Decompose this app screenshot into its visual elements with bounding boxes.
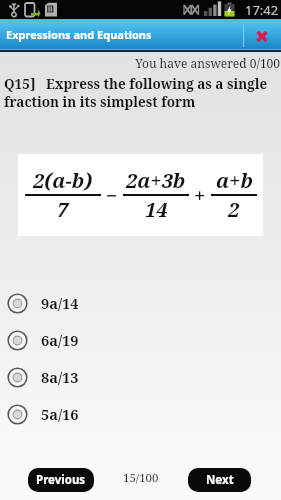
button[interactable]: Previous: [28, 468, 94, 492]
staticText: Previous: [36, 472, 86, 488]
staticText: 15/100: [123, 470, 159, 486]
staticText: +: [194, 182, 206, 209]
staticText: 17:42: [245, 1, 279, 19]
staticText: 5a/16: [41, 404, 79, 424]
staticText: 9a/14: [41, 293, 79, 313]
button[interactable]: 5a/16: [7, 403, 79, 425]
staticText: 2(a−b): [33, 167, 93, 194]
button[interactable]: [244, 19, 281, 52]
staticText: 2: [228, 196, 240, 223]
staticText: 14: [145, 196, 168, 223]
staticText: Next: [206, 472, 234, 488]
staticText: 2a+3b: [126, 167, 186, 194]
button[interactable]: 8a/13: [7, 366, 79, 388]
button[interactable]: 6a/19: [7, 329, 79, 351]
staticText: 7: [57, 196, 69, 223]
staticText: 8a/13: [41, 367, 79, 387]
staticText: −: [106, 182, 118, 209]
staticText: a+b: [216, 167, 253, 194]
button[interactable]: Next: [188, 468, 251, 492]
staticText: You have answered 0/100: [0, 55, 280, 71]
staticText: Q15] Express the following as a single f…: [4, 75, 268, 111]
button[interactable]: 9a/14: [7, 292, 79, 314]
staticText: Expressions and Equations: [6, 27, 152, 42]
staticText: 6a/19: [41, 330, 79, 350]
